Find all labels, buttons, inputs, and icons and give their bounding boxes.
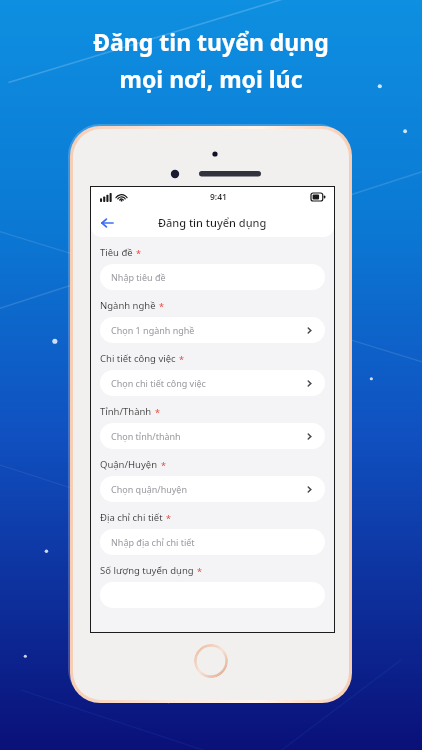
staticText: Ngành nghề bbox=[100, 299, 156, 312]
staticText: Quận/Huyện bbox=[100, 458, 158, 471]
staticText: Chi tiết công việc bbox=[100, 352, 176, 365]
staticText: Chọn tỉnh/thành bbox=[111, 430, 181, 442]
button[interactable]: Chọn 1 ngành nghề bbox=[100, 317, 325, 343]
staticText: Chọn 1 ngành nghề bbox=[111, 324, 195, 336]
staticText: Nhập tiêu đề bbox=[111, 271, 166, 283]
staticText: Chọn chi tiết công việc bbox=[111, 377, 206, 389]
staticText: Đăng tin tuyển dụng bbox=[93, 26, 329, 57]
staticText: * bbox=[159, 300, 164, 312]
staticText: Tiêu đề bbox=[100, 246, 133, 259]
button[interactable]: Chọn quận/huyện bbox=[100, 476, 325, 502]
staticText: * bbox=[166, 512, 171, 524]
button[interactable]: Nhập địa chỉ chi tiết bbox=[100, 529, 325, 555]
staticText: * bbox=[179, 353, 184, 365]
button[interactable]: Back bbox=[96, 212, 118, 234]
staticText: 9:41 bbox=[210, 191, 227, 203]
button[interactable]: Nhập tiêu đề bbox=[100, 264, 325, 290]
staticText: * bbox=[197, 565, 202, 577]
button[interactable]: Home bbox=[194, 644, 228, 678]
staticText: * bbox=[155, 406, 160, 418]
staticText: * bbox=[136, 247, 141, 259]
staticText: * bbox=[161, 459, 166, 471]
staticText: Đăng tin tuyển dụng bbox=[158, 215, 267, 230]
staticText: Nhập địa chỉ chi tiết bbox=[111, 536, 195, 548]
staticText: Tỉnh/Thành bbox=[100, 405, 152, 418]
staticText: mọi nơi, mọi lúc bbox=[119, 63, 303, 94]
button[interactable]: Chọn tỉnh/thành bbox=[100, 423, 325, 449]
button[interactable]: Chọn chi tiết công việc bbox=[100, 370, 325, 396]
staticText: Địa chỉ chi tiết bbox=[100, 511, 163, 524]
staticText: Số lượng tuyển dụng bbox=[100, 564, 194, 577]
staticText: Chọn quận/huyện bbox=[111, 483, 188, 495]
